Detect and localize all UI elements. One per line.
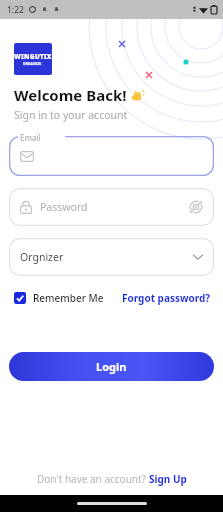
- button[interactable]: Login: [9, 352, 214, 381]
- staticText: Welcome Back!: [14, 85, 127, 105]
- staticText: ORGANIZER: [23, 62, 43, 66]
- button[interactable]: Sign Up: [149, 472, 187, 486]
- button[interactable]: Password: [9, 188, 214, 226]
- button[interactable]: Forgot password?: [122, 289, 211, 307]
- button[interactable]: Orgnizer: [9, 238, 214, 276]
- staticText: 1:22: [7, 4, 24, 16]
- staticText: Remember Me: [33, 291, 104, 305]
- staticText: Email: [20, 132, 41, 143]
- staticText: Login: [96, 359, 127, 374]
- staticText: Orgnizer: [20, 250, 64, 264]
- staticText: Password: [40, 200, 88, 214]
- button[interactable]: Email: [9, 136, 214, 176]
- staticText: Forgot password?: [122, 291, 211, 305]
- staticText: Don't have an account?: [37, 472, 149, 486]
- staticText: Sign in to your account: [14, 108, 128, 122]
- staticText: WINGUTIX: [14, 52, 52, 61]
- staticText: Sign Up: [149, 472, 187, 486]
- button[interactable]: Remember Me: [14, 289, 104, 307]
- button[interactable]: Show password: [187, 198, 205, 216]
